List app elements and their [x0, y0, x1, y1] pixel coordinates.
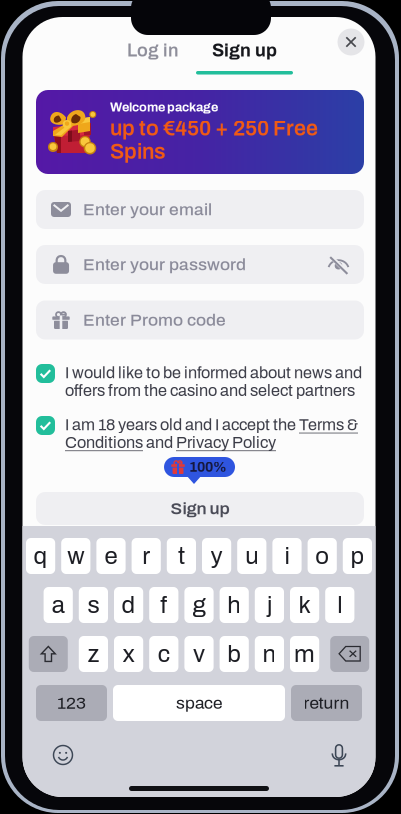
staticText: h — [227, 592, 241, 618]
staticText: m — [294, 641, 315, 667]
staticText: k — [299, 592, 311, 618]
button[interactable]: q — [26, 538, 55, 574]
button[interactable]: h — [220, 587, 249, 623]
button[interactable]: r — [132, 538, 161, 574]
button[interactable]: y — [202, 538, 231, 574]
button[interactable]: Emoji — [41, 737, 85, 773]
button[interactable]: w — [61, 538, 90, 574]
staticText: b — [227, 641, 241, 667]
button[interactable]: k — [290, 587, 319, 623]
staticText: z — [87, 641, 99, 667]
button[interactable]: Sign up — [196, 41, 293, 74]
staticText: Sign up — [212, 41, 277, 60]
staticText: up to €450 + 250 Free Spins — [110, 117, 318, 163]
staticText: u — [245, 543, 258, 569]
staticText: I am 18 years old and I accept the Terms… — [65, 416, 358, 451]
button[interactable]: b — [220, 636, 249, 672]
button[interactable]: x — [114, 636, 143, 672]
button[interactable]: Close — [331, 22, 371, 62]
staticText: q — [34, 543, 48, 569]
staticText: Log in — [127, 41, 179, 60]
button[interactable]: Enter your password — [36, 245, 364, 284]
staticText: c — [158, 641, 170, 667]
staticText: r — [142, 543, 150, 569]
staticText: f — [160, 592, 167, 618]
button[interactable]: Delete — [330, 636, 369, 672]
button[interactable]: l — [325, 587, 354, 623]
staticText: space — [176, 694, 222, 712]
staticText: x — [123, 641, 135, 667]
button[interactable]: m — [290, 636, 319, 672]
button[interactable]: Shift — [29, 636, 68, 672]
button[interactable]: p — [343, 538, 372, 574]
button[interactable]: j — [255, 587, 284, 623]
staticText: t — [178, 543, 185, 569]
staticText: w — [67, 543, 84, 569]
button[interactable]: Log in — [104, 41, 201, 74]
button[interactable]: 123 — [36, 685, 107, 721]
staticText: g — [192, 592, 205, 618]
staticText: e — [104, 543, 117, 569]
staticText: a — [52, 592, 65, 618]
staticText: Enter your email — [83, 200, 212, 219]
button[interactable]: space — [113, 685, 285, 721]
staticText: Sign up — [170, 499, 229, 518]
staticText: s — [87, 592, 99, 618]
staticText: i — [284, 543, 289, 569]
button[interactable]: v — [184, 636, 214, 672]
staticText: v — [193, 641, 205, 667]
button[interactable]: f — [149, 587, 178, 623]
button[interactable]: i — [272, 538, 302, 574]
staticText: n — [262, 641, 276, 667]
button[interactable]: u — [237, 538, 266, 574]
staticText: d — [122, 592, 136, 618]
staticText: p — [350, 543, 364, 569]
button[interactable]: z — [79, 636, 108, 672]
button[interactable]: a — [44, 587, 73, 623]
staticText: o — [315, 543, 329, 569]
button[interactable]: t — [167, 538, 196, 574]
button[interactable]: d — [114, 587, 143, 623]
staticText: I would like to be informed about news a… — [65, 364, 362, 399]
button[interactable]: c — [149, 636, 178, 672]
button[interactable]: n — [255, 636, 284, 672]
staticText: j — [267, 592, 272, 618]
button[interactable]: g — [184, 587, 214, 623]
staticText: Enter Promo code — [83, 311, 226, 329]
staticText: 123 — [57, 694, 86, 712]
button[interactable]: e — [96, 538, 126, 574]
button[interactable]: Sign up — [36, 492, 364, 525]
staticText: l — [337, 592, 342, 618]
staticText: return — [303, 694, 349, 712]
staticText: Welcome package — [110, 100, 218, 114]
staticText: y — [211, 543, 223, 569]
staticText: Enter your password — [83, 255, 246, 274]
button[interactable]: Enter your email — [36, 190, 364, 229]
button[interactable]: return — [291, 685, 362, 721]
button[interactable]: s — [79, 587, 108, 623]
staticText: 100% — [189, 459, 227, 475]
button[interactable]: o — [308, 538, 337, 574]
button[interactable]: Enter Promo code — [36, 300, 364, 339]
button[interactable]: Dictate — [317, 737, 361, 773]
